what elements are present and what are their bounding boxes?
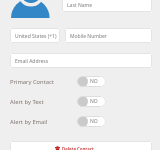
button[interactable]: United States (+1) — [10, 28, 60, 43]
button[interactable]: Toggle off — [77, 116, 106, 127]
staticText: Email Address — [15, 58, 49, 65]
button[interactable]: Primary Contact — [0, 73, 160, 89]
staticText: NO — [90, 118, 98, 125]
staticText: NO — [90, 78, 98, 85]
staticText: Last Name — [67, 2, 93, 9]
button[interactable]: Toggle off — [77, 76, 106, 87]
staticText: United States (+1) — [15, 33, 57, 40]
button[interactable]: Alert by Text — [0, 93, 160, 109]
button[interactable]: Mobile Number — [65, 28, 152, 43]
button[interactable]: Alert by Email — [0, 113, 160, 129]
staticText: Mobile Number — [70, 33, 107, 40]
button[interactable]: Delete Contact — [10, 141, 152, 150]
staticText: Alert by Text — [10, 98, 44, 106]
button[interactable]: Toggle off — [77, 96, 106, 107]
staticText: Delete Contact — [62, 146, 94, 150]
staticText: Primary Contact — [10, 78, 54, 86]
button[interactable]: Last Name — [62, 0, 152, 12]
staticText: Alert by Email — [10, 118, 48, 126]
staticText: NO — [90, 98, 98, 105]
button[interactable]: Email Address — [10, 53, 152, 68]
